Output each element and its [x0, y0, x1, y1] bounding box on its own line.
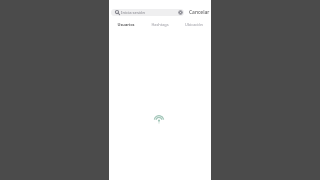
button[interactable]: Inicia sesión — [111, 9, 184, 16]
staticText: Hashtags — [151, 22, 169, 27]
staticText: Inicia sesión — [121, 10, 146, 16]
staticText: Ubicación — [185, 22, 203, 27]
button[interactable]: Usuarios — [109, 21, 143, 28]
button[interactable]: Hashtags — [143, 21, 177, 28]
button[interactable]: Cancelar — [184, 8, 211, 16]
staticText: Usuarios — [117, 22, 135, 27]
button[interactable]: Borrar búsqueda — [178, 10, 183, 15]
staticText: Cancelar — [189, 9, 210, 16]
other: Cargando resultados — [154, 113, 164, 123]
button[interactable]: Ubicación — [177, 21, 211, 28]
